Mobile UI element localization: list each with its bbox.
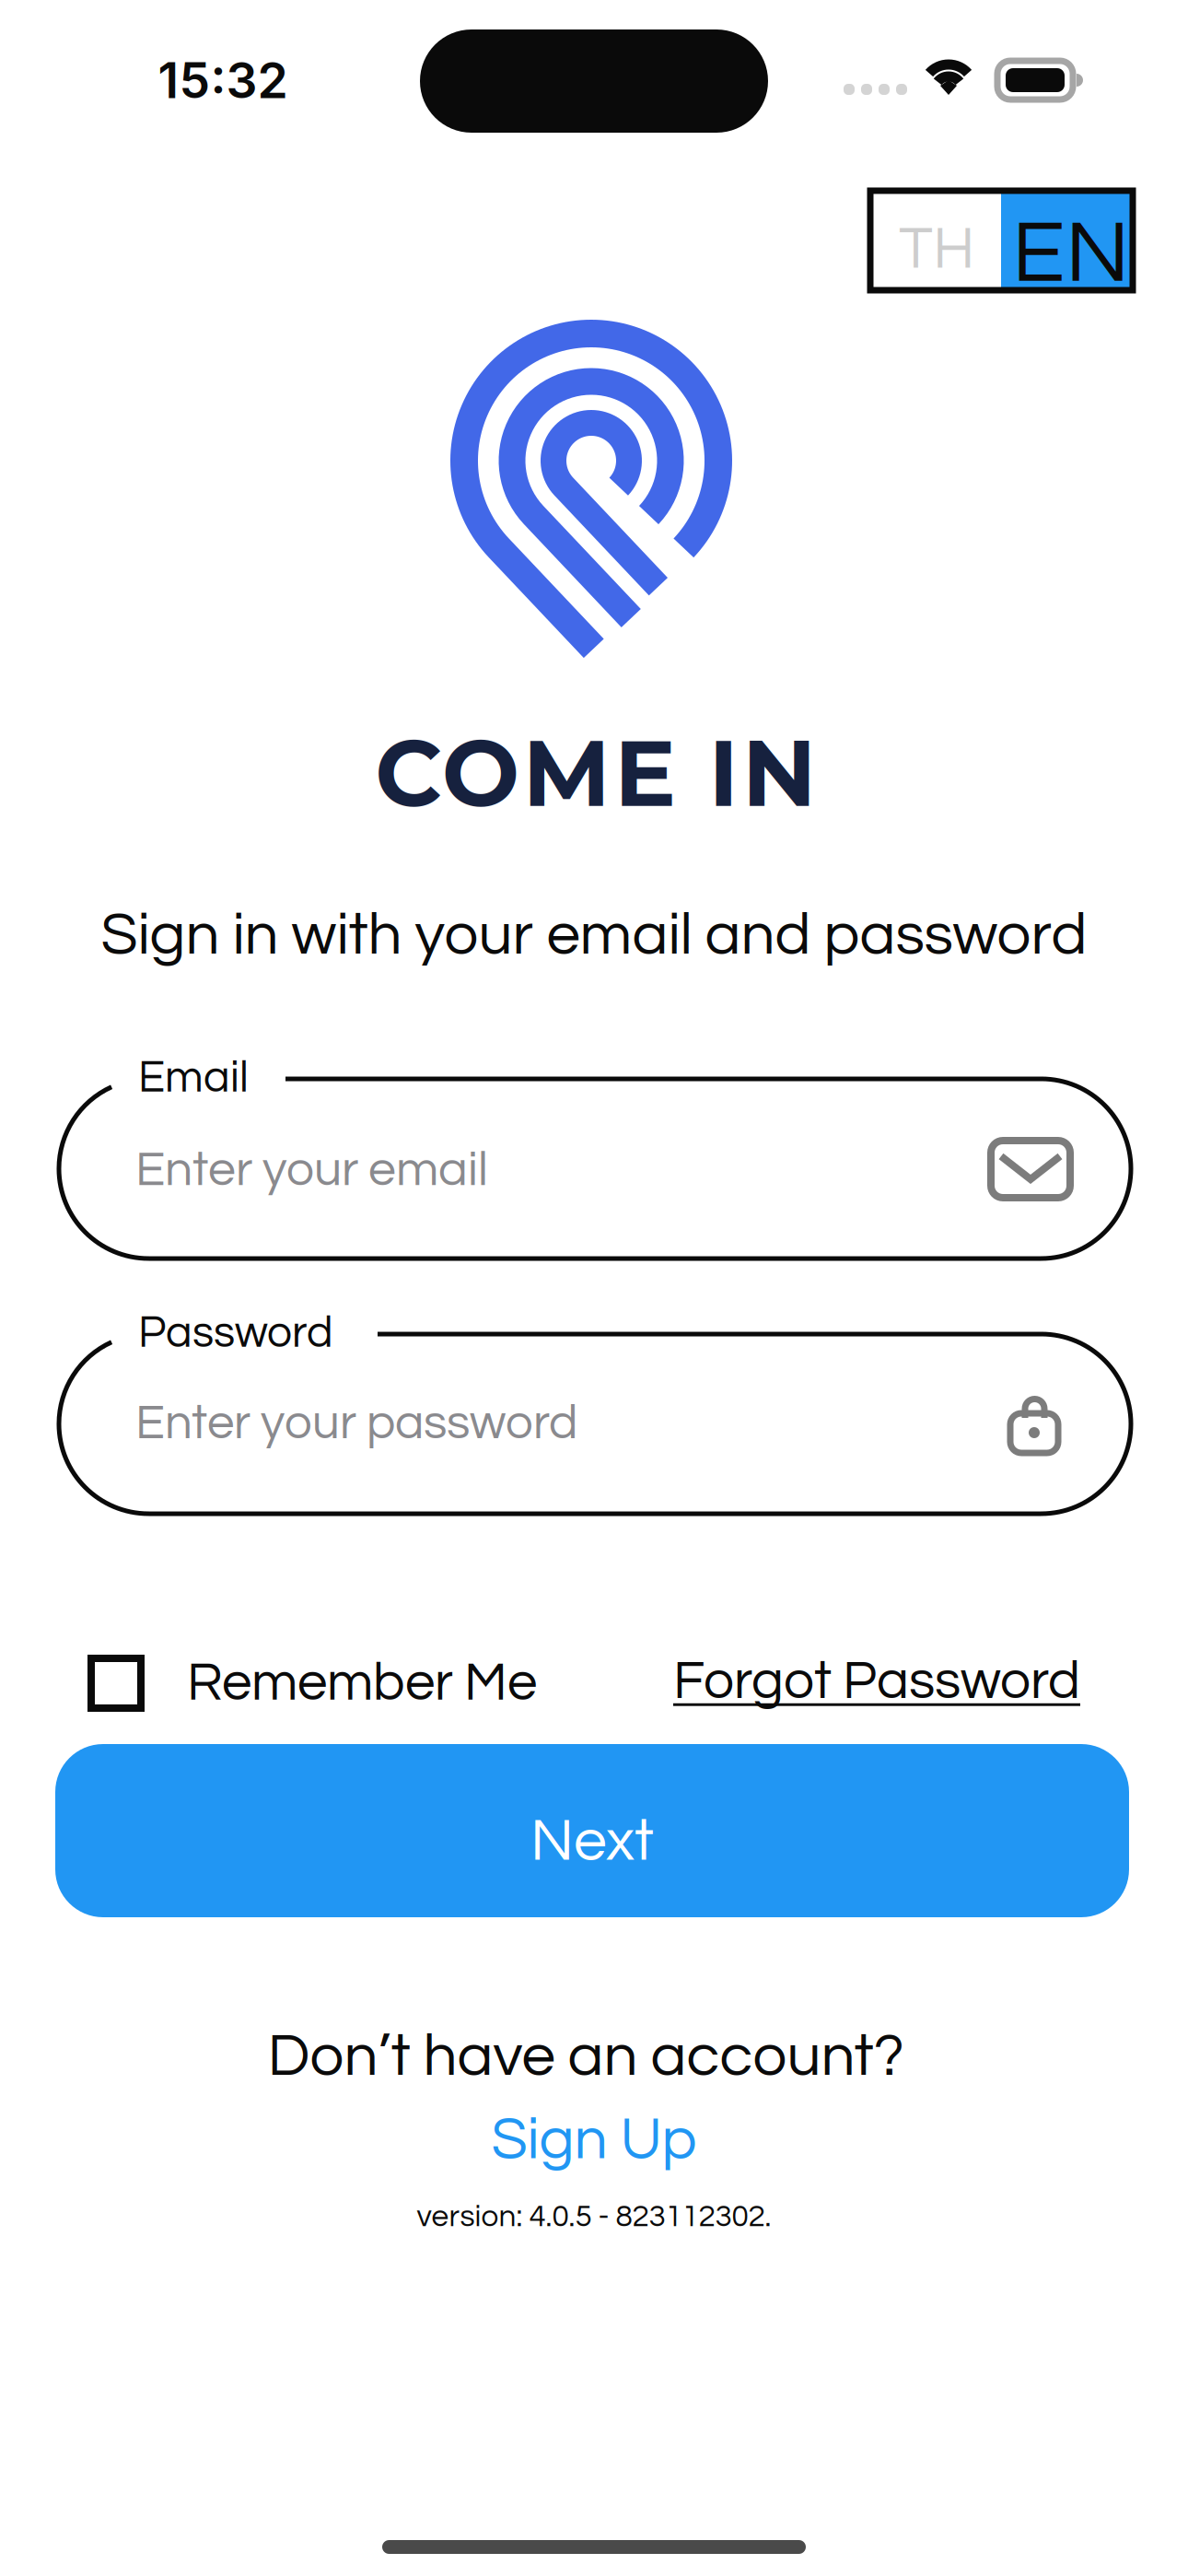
staticText: Forgot Password bbox=[673, 1654, 1080, 1709]
staticText: TH bbox=[899, 218, 975, 280]
button[interactable]: Next bbox=[55, 1744, 1129, 1917]
staticText: Next bbox=[530, 1811, 654, 1872]
staticText: version: 4.0.5 - 823112302. bbox=[417, 2201, 771, 2232]
staticText: EN bbox=[1012, 209, 1129, 299]
staticText: Sign in with your email and password bbox=[101, 904, 1087, 966]
staticText: Don’t have an account? bbox=[268, 2025, 904, 2087]
button[interactable]: EN bbox=[1001, 191, 1133, 290]
staticText: COME IN bbox=[375, 717, 817, 829]
staticText: Sign Up bbox=[491, 2110, 697, 2171]
staticText: 15:32 bbox=[158, 50, 288, 110]
button[interactable]: Forgot Password bbox=[673, 1642, 1080, 1721]
button[interactable]: Sign Up bbox=[0, 2108, 1188, 2172]
staticText: Password bbox=[138, 1310, 333, 1356]
staticText: Email bbox=[138, 1055, 249, 1101]
staticText: Remember Me bbox=[187, 1656, 537, 1711]
staticText: Enter your email bbox=[135, 1145, 488, 1195]
staticText: Enter your password bbox=[135, 1398, 577, 1448]
button[interactable]: TH bbox=[870, 191, 1001, 290]
button[interactable]: Remember Me bbox=[91, 1644, 537, 1723]
